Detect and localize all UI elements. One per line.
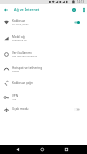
staticText: Hotspot ve tethering: [12, 66, 72, 70]
staticText: TP-LINK_D55A: [12, 22, 74, 25]
button[interactable]: Hotspot ve tethering: [0, 62, 87, 77]
button[interactable]: Kablosuz çağrı: [0, 78, 87, 89]
button[interactable]: Mobil ağ: [0, 31, 87, 46]
button[interactable]: Back: [0, 4, 11, 15]
staticText: Kapalı: [12, 69, 74, 72]
staticText: 383 MB veri kullanıldı: [12, 54, 74, 57]
staticText: vodafone TR: [12, 38, 74, 41]
staticText: Ağ ve İnternet: [14, 7, 40, 12]
staticText: Mobil ağ: [12, 35, 72, 39]
staticText: 14:13: [77, 0, 85, 4]
staticText: Yok: [12, 97, 74, 100]
staticText: Kablosuz çağrı: [12, 81, 72, 85]
button[interactable]: Uçak modu: [0, 104, 87, 115]
staticText: Veri kullanımı: [12, 51, 72, 55]
button[interactable]: Veri kullanımı: [0, 47, 87, 62]
button[interactable]: Help: [67, 4, 80, 15]
button[interactable]: VPN: [0, 90, 87, 105]
button[interactable]: More options: [80, 4, 87, 15]
staticText: Uçak modu: [12, 107, 72, 111]
staticText: Kablosuz: [12, 19, 72, 23]
staticText: VPN: [12, 94, 72, 98]
button[interactable]: Kablosuz: [0, 15, 87, 30]
